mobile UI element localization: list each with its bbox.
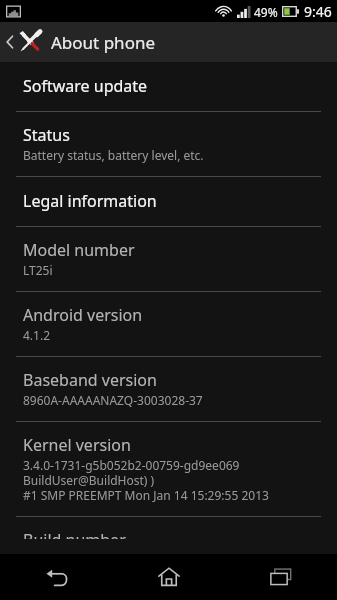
staticText: 8960A-AAAAANAZQ-3003028-37 xyxy=(23,392,203,408)
button[interactable]: Home xyxy=(113,554,225,600)
button[interactable]: Baseband version xyxy=(0,357,337,421)
button[interactable]: Legal information xyxy=(0,177,337,226)
staticText: 3.4.0-1731-g5b052b2-00759-gd9ee069 Build… xyxy=(23,457,269,503)
staticText: Battery status, battery level, etc. xyxy=(23,147,204,163)
button[interactable]: Build number xyxy=(0,517,337,552)
button[interactable]: Software update xyxy=(0,62,337,111)
staticText: Software update xyxy=(23,75,148,97)
staticText: Model number xyxy=(23,239,135,261)
staticText: Baseband version xyxy=(23,369,157,391)
staticText: About phone xyxy=(51,31,156,54)
button[interactable]: Recent apps xyxy=(225,554,337,600)
button[interactable]: Status xyxy=(0,112,337,176)
staticText: LT25i xyxy=(23,262,53,278)
staticText: 49% xyxy=(254,4,278,20)
button[interactable]: Back xyxy=(0,554,113,600)
staticText: 4.1.2 xyxy=(23,327,51,343)
staticText: Android version xyxy=(23,304,143,326)
staticText: Status xyxy=(23,124,70,146)
button[interactable]: Android version xyxy=(0,292,337,356)
staticText: Legal information xyxy=(23,190,157,212)
staticText: 9:46 xyxy=(304,2,332,21)
button[interactable]: Model number xyxy=(0,227,337,291)
button[interactable]: Kernel version xyxy=(0,422,337,516)
staticText: Build number xyxy=(23,529,126,539)
button[interactable]: Up, About phone xyxy=(0,22,337,62)
staticText: Kernel version xyxy=(23,434,131,456)
